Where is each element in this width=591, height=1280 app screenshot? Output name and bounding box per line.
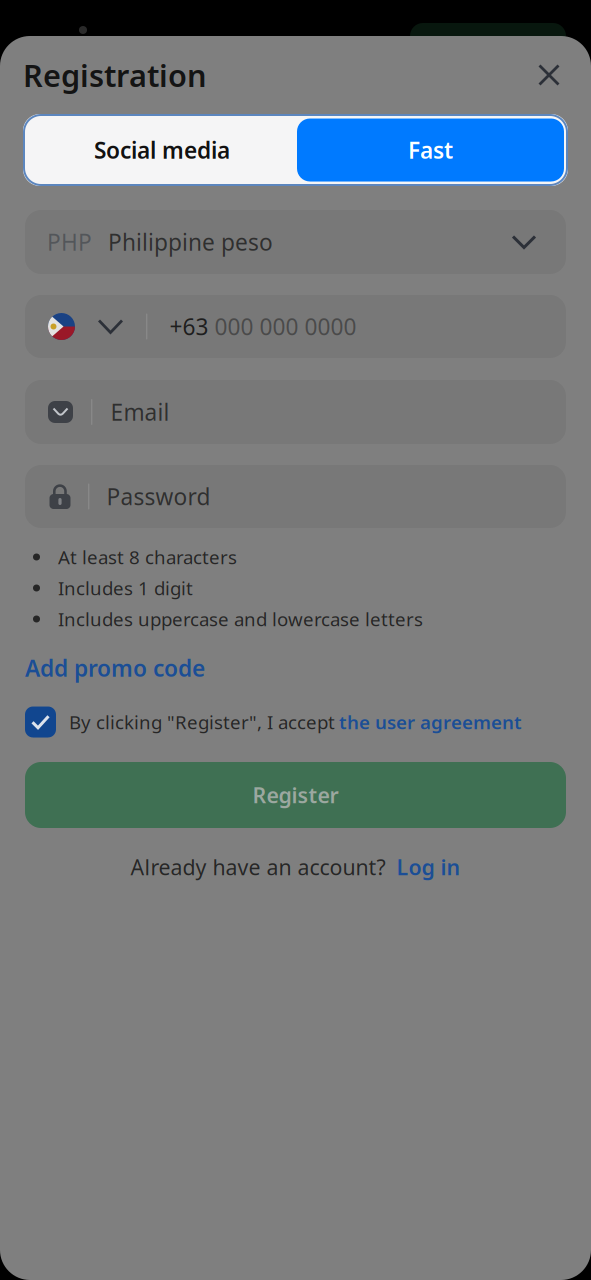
button[interactable]: Accept user agreement xyxy=(25,706,56,737)
staticText: Register xyxy=(252,781,338,809)
button[interactable]: PHP xyxy=(25,210,566,274)
button[interactable]: Social media xyxy=(27,118,297,181)
button[interactable]: Log in xyxy=(396,853,460,881)
staticText: 000 000 0000 xyxy=(214,311,356,341)
staticText: Log in xyxy=(396,853,460,881)
staticText: Includes uppercase and lowercase letters xyxy=(58,607,423,631)
staticText: By clicking "Register", I accept xyxy=(69,710,335,734)
staticText: Includes 1 digit xyxy=(58,576,193,600)
button[interactable]: Close xyxy=(521,47,577,103)
button[interactable]: Fast xyxy=(297,118,564,181)
button[interactable]: the user agreement xyxy=(339,710,522,734)
staticText: the user agreement xyxy=(339,710,522,734)
staticText: Password xyxy=(106,481,210,511)
staticText: +63 xyxy=(169,311,208,341)
staticText: PHP xyxy=(47,227,92,257)
staticText: Philippine peso xyxy=(108,227,273,257)
staticText: Social media xyxy=(94,135,230,165)
button[interactable]: Add promo code xyxy=(25,653,205,683)
staticText: Fast xyxy=(408,135,453,165)
button[interactable]: Register xyxy=(25,762,566,828)
button[interactable]: Select country code xyxy=(25,295,146,358)
staticText: Add promo code xyxy=(25,653,205,683)
staticText: Already have an account? xyxy=(130,853,385,881)
staticText: At least 8 characters xyxy=(58,545,237,569)
staticText: Email xyxy=(110,397,169,427)
staticText: Registration xyxy=(23,55,207,95)
